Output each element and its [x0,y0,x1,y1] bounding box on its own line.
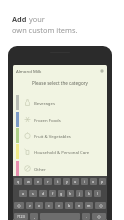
button[interactable]: , [30,213,38,220]
button[interactable]: s [29,190,37,197]
staticText: b [68,203,71,208]
staticText: Add [12,14,29,24]
staticText: t [57,179,59,184]
button[interactable]: q [14,178,22,185]
button[interactable]: v [55,202,63,209]
staticText: q [17,179,20,184]
button[interactable]: m [85,202,93,209]
staticText: ?123 [17,214,25,219]
staticText: l [97,191,98,196]
staticText: Household & Personal Care [34,149,90,155]
staticText: o [92,179,95,184]
button[interactable]: Almond Milk [16,66,104,75]
staticText: d [42,191,45,196]
button[interactable]: . [82,213,90,220]
button[interactable]: z [26,202,33,209]
button[interactable]: Clear text [100,69,104,73]
button[interactable]: n [75,202,83,209]
button[interactable]: Other [13,161,107,176]
button[interactable]: u [72,178,79,185]
staticText: x [38,203,40,208]
button[interactable]: e [34,178,42,185]
staticText: own custom items. [12,25,78,35]
staticText: c [48,203,50,208]
staticText: f [52,191,54,196]
button[interactable]: p [99,178,106,185]
button[interactable]: y [63,178,70,185]
staticText: your [29,14,45,24]
staticText: . [86,214,87,219]
staticText: v [58,203,60,208]
staticText: i [84,179,85,184]
button[interactable]: key [14,202,24,209]
button[interactable]: Beverages [13,95,107,110]
button[interactable]: key [92,213,106,220]
button[interactable]: i [81,178,88,185]
staticText: h [69,191,72,196]
button[interactable]: d [39,190,47,197]
staticText: u [74,179,77,184]
staticText: s [32,191,34,196]
staticText: a [22,191,25,196]
staticText: Frozen Foods [34,117,61,123]
staticText: Please select the category [13,80,107,86]
button[interactable]: h [67,190,74,197]
button[interactable]: g [58,190,65,197]
staticText: Beverages [34,100,55,106]
staticText: g [60,191,63,196]
button[interactable]: l [94,190,101,197]
button[interactable]: x [35,202,43,209]
staticText: k [88,191,90,196]
button[interactable]: r [44,178,52,185]
button[interactable]: Household & Personal Care [13,144,107,159]
staticText: p [101,179,104,184]
button[interactable]: c [45,202,53,209]
button[interactable]: k [85,190,92,197]
staticText: n [78,203,81,208]
staticText: w [27,179,30,184]
staticText: Fruit & Vegetables [34,133,71,139]
button[interactable]: j [76,190,83,197]
button[interactable]: b [65,202,73,209]
staticText: m [87,203,91,208]
button[interactable]: w [24,178,32,185]
button[interactable]: o [90,178,97,185]
button[interactable]: f [49,190,56,197]
staticText: j [79,191,80,196]
staticText: Almond Milk [16,68,42,74]
staticText: r [47,179,49,184]
staticText: y [66,179,68,184]
staticText: Other [34,166,46,172]
button[interactable]: ?123 [14,213,28,220]
staticText: , [34,214,35,219]
staticText: z [29,203,31,208]
button[interactable]: key [95,202,106,209]
button[interactable]: t [54,178,61,185]
button[interactable]: Frozen Foods [13,112,107,127]
button[interactable]: a [19,190,27,197]
button[interactable]: Fruit & Vegetables [13,128,107,143]
staticText: e [37,179,40,184]
